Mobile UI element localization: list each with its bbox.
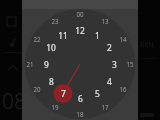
- button[interactable]: Sound: [0, 32, 160, 52]
- button[interactable]: 18: [71, 108, 89, 120]
- staticText: 20: [33, 85, 41, 93]
- staticText: 19: [51, 103, 59, 111]
- staticText: 10: [46, 42, 56, 53]
- button[interactable]: Collapse: [6, 61, 20, 75]
- button[interactable]: 13: [96, 15, 114, 27]
- staticText: 23: [51, 17, 59, 25]
- button[interactable]: 1: [88, 29, 106, 41]
- button[interactable]: 8: [42, 75, 60, 87]
- staticText: 16: [119, 85, 127, 93]
- button[interactable]: 6: [71, 92, 89, 104]
- button[interactable]: 00: [71, 8, 89, 20]
- button[interactable]: 22: [28, 33, 46, 45]
- button[interactable]: 20: [28, 83, 46, 95]
- staticText: REN: [140, 40, 154, 50]
- staticText: 00: [76, 10, 84, 18]
- button[interactable]: 3: [105, 58, 123, 70]
- button[interactable]: 12: [71, 24, 89, 36]
- button[interactable]: 9: [37, 58, 55, 70]
- staticText: 8: [49, 76, 54, 87]
- button[interactable]: 11: [54, 29, 72, 41]
- staticText: 1: [95, 30, 100, 41]
- staticText: 5: [95, 88, 100, 99]
- button[interactable]: 17: [96, 101, 114, 113]
- button[interactable]: 5: [88, 87, 106, 99]
- staticText: 08: [2, 87, 26, 116]
- staticText: 11: [58, 30, 68, 41]
- staticText: 21: [26, 60, 34, 68]
- staticText: 12: [75, 25, 85, 36]
- button[interactable]: 23: [46, 15, 64, 27]
- staticText: 3: [112, 59, 117, 70]
- staticText: 17: [101, 103, 109, 111]
- staticText: 6: [78, 93, 83, 104]
- button[interactable]: 15: [121, 58, 139, 70]
- button[interactable]: Select: [7, 17, 16, 26]
- button[interactable]: 14: [114, 33, 132, 45]
- button[interactable]: 10: [42, 41, 60, 53]
- button[interactable]: 7: [54, 87, 72, 99]
- button[interactable]: 16: [114, 83, 132, 95]
- button[interactable]: 4: [100, 75, 118, 87]
- staticText: 7: [61, 88, 66, 99]
- staticText: 14: [119, 35, 127, 43]
- staticText: 15: [126, 60, 134, 68]
- staticText: 4: [107, 76, 112, 87]
- staticText: 22: [33, 35, 41, 43]
- button[interactable]: 2: [100, 41, 118, 53]
- button[interactable]: 21: [21, 58, 39, 70]
- staticText: 9: [44, 59, 49, 70]
- button[interactable]: 19: [46, 101, 64, 113]
- staticText: 2: [107, 42, 112, 53]
- staticText: 13: [101, 17, 109, 25]
- other: Sound: [8, 38, 17, 47]
- staticText: 18: [76, 110, 84, 118]
